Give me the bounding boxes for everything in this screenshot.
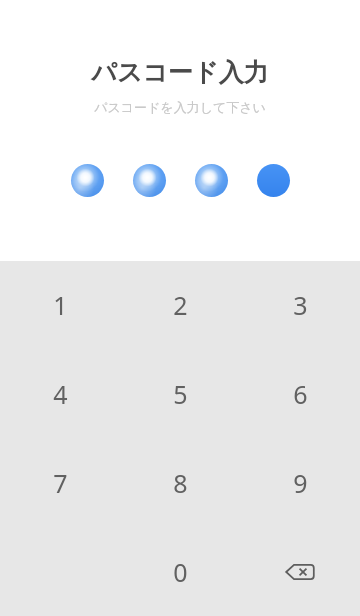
staticText: パスコードを入力して下さい [94, 99, 266, 115]
staticText: 4 [53, 377, 68, 411]
button[interactable]: 5 [120, 349, 240, 438]
staticText: 2 [173, 288, 188, 322]
button[interactable]: 3 [240, 261, 360, 349]
staticText: 1 [53, 288, 68, 322]
staticText: 8 [173, 466, 188, 500]
button[interactable]: 2 [120, 261, 240, 349]
button[interactable]: 7 [0, 438, 120, 527]
staticText: 5 [173, 377, 188, 411]
button[interactable]: 9 [240, 438, 360, 527]
button[interactable]: Backspace [240, 527, 360, 616]
button[interactable]: 8 [120, 438, 240, 527]
button[interactable]: 0 [120, 527, 240, 616]
button[interactable]: 4 [0, 349, 120, 438]
button[interactable]: 6 [240, 349, 360, 438]
staticText: 7 [53, 466, 68, 500]
staticText: 3 [293, 288, 308, 322]
staticText: 6 [293, 377, 308, 411]
staticText: 0 [173, 555, 188, 589]
button[interactable]: 1 [0, 261, 120, 349]
staticText: パスコード入力 [91, 57, 269, 88]
staticText: 9 [293, 466, 308, 500]
